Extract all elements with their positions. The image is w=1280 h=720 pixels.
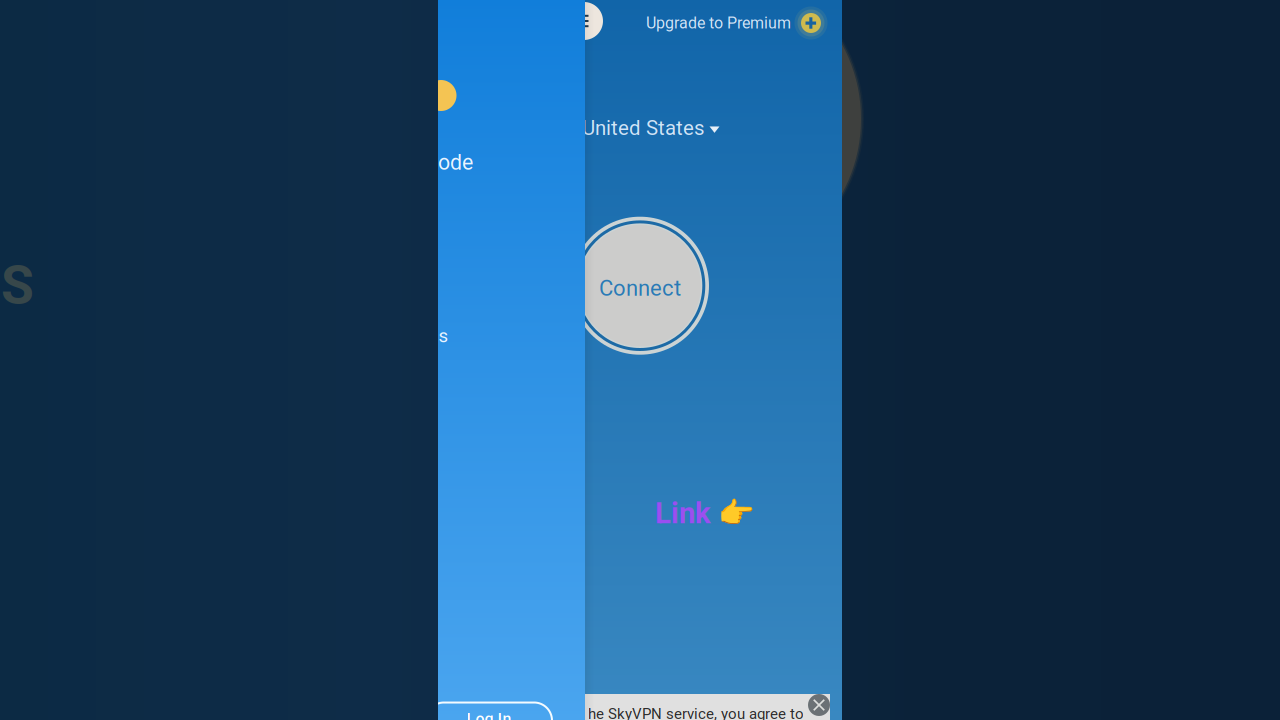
button[interactable]: United States (582, 116, 719, 140)
staticText: he SkyVPN service, you agree to (588, 705, 804, 720)
staticText: Link 👉 (655, 496, 755, 530)
staticText: United States (582, 116, 705, 140)
button[interactable]: Log In (426, 702, 552, 720)
staticText: S (1, 254, 34, 316)
button[interactable]: Menu (565, 2, 603, 40)
button[interactable]: Connect (571, 217, 709, 355)
staticText: Log In (466, 710, 511, 720)
staticText: Upgrade to Premium (646, 14, 791, 32)
staticText: Code (424, 150, 473, 175)
button[interactable]: Upgrade to Premium (646, 13, 821, 33)
staticText: Terms (396, 325, 448, 347)
button[interactable]: Close (808, 694, 830, 716)
staticText: Connect (599, 275, 681, 301)
